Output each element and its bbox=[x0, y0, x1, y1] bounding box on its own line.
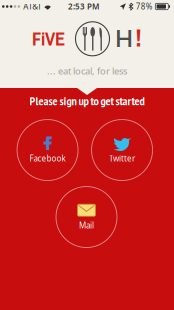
staticText: Please sign up to get started bbox=[29, 93, 144, 108]
button[interactable]: Facebook bbox=[17, 119, 78, 180]
staticText: 2:53 PM bbox=[68, 1, 99, 12]
button[interactable]: Mail bbox=[56, 186, 117, 247]
staticText: ... eat local, for less bbox=[47, 65, 127, 77]
staticText: Twitter bbox=[109, 153, 135, 164]
staticText: Mail bbox=[79, 220, 94, 231]
staticText: ! bbox=[135, 26, 142, 51]
staticText: FiVE bbox=[32, 26, 65, 51]
staticText: Facebook bbox=[30, 153, 66, 164]
staticText: H bbox=[115, 25, 133, 52]
button[interactable]: Twitter bbox=[91, 119, 152, 180]
staticText: AT&T bbox=[23, 1, 41, 12]
staticText: 78% bbox=[136, 1, 153, 12]
